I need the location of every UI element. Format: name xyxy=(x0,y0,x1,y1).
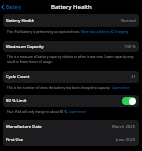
staticText: Battery Health xyxy=(51,3,92,11)
button[interactable]: Learn more xyxy=(112,86,130,90)
staticText: Battery xyxy=(6,4,22,10)
button[interactable]: Learn more xyxy=(69,110,87,114)
button[interactable]: Cycle Count xyxy=(3,71,139,83)
button[interactable]: Manufacture Date xyxy=(3,120,139,133)
staticText: 80 % Limit xyxy=(6,98,27,104)
button[interactable]: Maximum Capacity xyxy=(3,41,139,52)
staticText: This iPad battery is performing as expec… xyxy=(7,30,81,34)
other: 80 % Limit toggle, on xyxy=(122,97,136,105)
button[interactable]: Battery xyxy=(0,4,24,10)
staticText: June 2025 xyxy=(116,137,136,143)
button[interactable]: 80 % Limit xyxy=(3,95,139,107)
staticText: 100 % xyxy=(124,44,136,50)
staticText: This is a measure of battery capacity re… xyxy=(7,55,135,64)
button[interactable]: More about Battery & Charging xyxy=(81,30,128,34)
staticText: Battery Health xyxy=(6,18,35,24)
button[interactable]: Battery Health xyxy=(3,14,139,27)
staticText: First Use xyxy=(6,137,24,143)
staticText: Normal xyxy=(121,18,136,24)
staticText: 31 xyxy=(131,74,136,80)
staticText: Maximum Capacity xyxy=(6,44,44,50)
staticText: Your iPad will only charge to about 80 %… xyxy=(7,110,69,114)
staticText: Cycle Count xyxy=(6,74,30,80)
staticText: Manufacture Date xyxy=(6,124,42,130)
staticText: March 2025 xyxy=(112,124,136,130)
staticText: This is the number of times the battery … xyxy=(7,86,112,90)
button[interactable]: First Use xyxy=(3,133,139,146)
